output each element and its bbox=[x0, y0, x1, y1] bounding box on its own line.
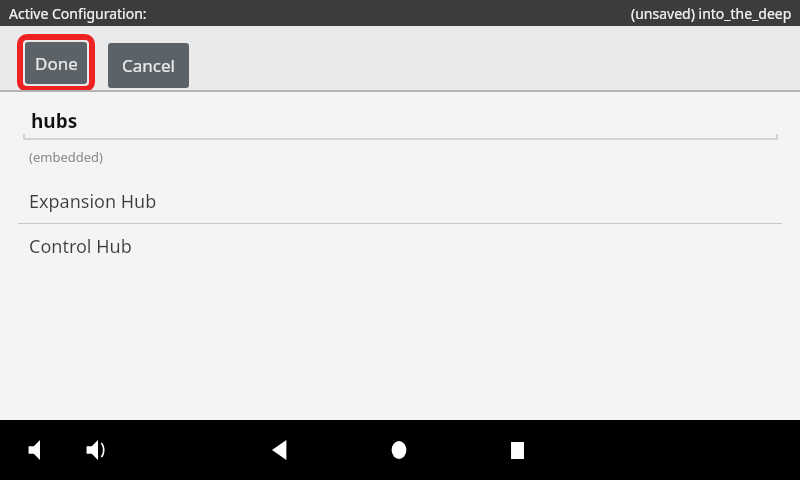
button[interactable]: Expansion Hub bbox=[0, 180, 800, 223]
staticText: Expansion Hub bbox=[29, 189, 157, 214]
button[interactable]: Cancel bbox=[108, 43, 189, 88]
button[interactable]: Back bbox=[262, 432, 298, 468]
button[interactable]: hubs bbox=[0, 105, 800, 137]
button[interactable]: Done bbox=[17, 34, 95, 92]
staticText: Cancel bbox=[122, 54, 175, 77]
staticText: (embedded) bbox=[29, 148, 103, 166]
button[interactable]: Volume up bbox=[80, 432, 116, 468]
button[interactable]: Control Hub bbox=[0, 224, 800, 268]
staticText: Done bbox=[35, 52, 78, 75]
staticText: Control Hub bbox=[29, 234, 132, 259]
staticText: hubs bbox=[31, 108, 78, 134]
button[interactable]: Recent apps bbox=[499, 432, 535, 468]
staticText: (unsaved) into_the_deep bbox=[631, 4, 792, 23]
button[interactable]: Volume down bbox=[22, 432, 58, 468]
button[interactable]: Home bbox=[381, 432, 417, 468]
staticText: Active Configuration: bbox=[9, 4, 147, 23]
